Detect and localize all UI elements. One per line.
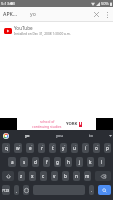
button[interactable]: n [73, 171, 80, 181]
button[interactable]: Emoji [23, 185, 29, 195]
staticText: 1 [7, 143, 9, 146]
staticText: k [89, 159, 92, 165]
staticText: YORK [66, 121, 78, 127]
staticText: q [5, 145, 8, 151]
staticText: you [56, 133, 63, 138]
button[interactable]: i [82, 143, 89, 153]
staticText: 5:13:00 [1, 1, 16, 7]
staticText: 0 [108, 143, 110, 146]
button[interactable]: y [60, 143, 67, 153]
staticText: b [64, 173, 67, 179]
staticText: 50% [101, 1, 109, 6]
button[interactable]: p [104, 143, 111, 153]
staticText: Installed on Dec 31, 2008 1:30:00 a.m. [14, 32, 71, 36]
staticText: u [73, 145, 76, 151]
button[interactable]: Advertisement [0, 118, 113, 130]
staticText: v [53, 173, 56, 179]
staticText: ?123 [2, 188, 10, 193]
button[interactable]: o [93, 143, 100, 153]
button[interactable]: k [87, 157, 94, 167]
button[interactable]: YouTube [0, 22, 113, 38]
staticText: YouTube [14, 25, 33, 31]
staticText: 7 [75, 143, 77, 146]
staticText: continuing studies [32, 124, 62, 129]
button[interactable]: t [49, 143, 56, 153]
button[interactable]: v [51, 171, 58, 181]
staticText: o [95, 145, 98, 151]
staticText: a [11, 159, 14, 165]
button[interactable]: c [40, 171, 47, 181]
button[interactable]: w [14, 143, 22, 153]
button[interactable]: Shift [2, 171, 14, 181]
button[interactable]: b [62, 171, 69, 181]
button[interactable]: g [54, 157, 61, 167]
staticText: g [56, 159, 59, 165]
staticText: , [16, 188, 18, 193]
button[interactable]: q [2, 143, 10, 153]
button[interactable]: j [76, 157, 83, 167]
button[interactable]: Clear search [90, 8, 102, 20]
staticText: s [23, 159, 26, 165]
staticText: . [91, 188, 93, 193]
button[interactable]: to [75, 130, 107, 141]
staticText: l [101, 159, 103, 165]
button[interactable]: x [29, 171, 36, 181]
staticText: 8 [86, 143, 88, 146]
staticText: x [31, 173, 34, 179]
staticText: i [85, 145, 87, 151]
staticText: m [85, 173, 90, 179]
button[interactable]: z [18, 171, 25, 181]
button[interactable]: . [89, 185, 94, 195]
button[interactable]: Expand suggestions [107, 133, 113, 139]
staticText: APK... [3, 10, 18, 17]
staticText: 3 [31, 143, 33, 146]
button[interactable]: m [84, 171, 91, 181]
button[interactable]: f [43, 157, 50, 167]
staticText: yo [25, 133, 30, 138]
staticText: w [16, 145, 20, 151]
staticText: to [89, 133, 93, 138]
button[interactable]: More options [102, 9, 113, 20]
button[interactable]: you [43, 130, 75, 141]
button[interactable]: l [98, 157, 105, 167]
staticText: f [46, 159, 48, 165]
staticText: r [41, 145, 43, 151]
staticText: e [29, 145, 32, 151]
staticText: 9 [97, 143, 99, 146]
staticText: h [67, 159, 70, 165]
staticText: z [20, 173, 23, 179]
button[interactable]: a [8, 157, 16, 167]
button[interactable]: e [26, 143, 34, 153]
button[interactable]: u [71, 143, 78, 153]
staticText: yo [30, 10, 36, 17]
staticText: 4 [42, 143, 44, 146]
staticText: 5 [53, 143, 55, 146]
button[interactable]: Backspace [95, 171, 111, 181]
staticText: 6 [64, 143, 66, 146]
button[interactable]: , [14, 185, 19, 195]
button[interactable]: ?123 [2, 185, 10, 195]
staticText: t [52, 145, 54, 151]
button[interactable]: Search [98, 185, 111, 195]
staticText: j [79, 159, 81, 165]
staticText: d [34, 159, 37, 165]
button[interactable]: h [65, 157, 72, 167]
staticText: n [75, 173, 78, 179]
button[interactable]: r [38, 143, 45, 153]
staticText: school of [40, 119, 55, 124]
staticText: y [62, 145, 65, 151]
staticText: c [42, 173, 45, 179]
staticText: 2 [19, 143, 21, 146]
button[interactable]: d [32, 157, 39, 167]
button[interactable]: s [20, 157, 28, 167]
button[interactable]: yo [11, 130, 43, 141]
staticText: p [106, 145, 109, 151]
